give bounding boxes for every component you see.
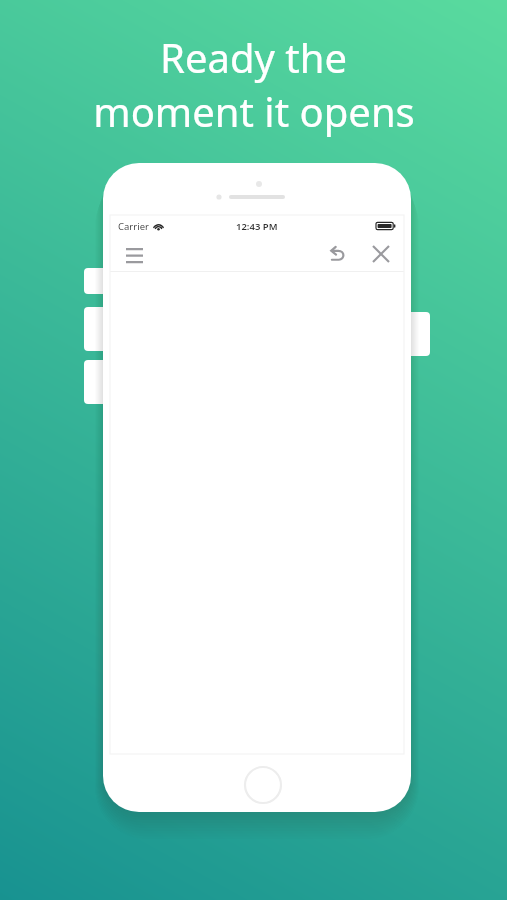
button[interactable]: Menu [120, 240, 148, 268]
staticText: moment it opens [93, 84, 415, 138]
staticText: Carrier [118, 220, 149, 233]
button[interactable]: Undo [322, 239, 352, 269]
button[interactable]: Close [366, 239, 396, 269]
staticText: Ready the [160, 30, 347, 84]
button[interactable]: Home [244, 766, 282, 804]
staticText: 12:43 PM [236, 220, 278, 233]
